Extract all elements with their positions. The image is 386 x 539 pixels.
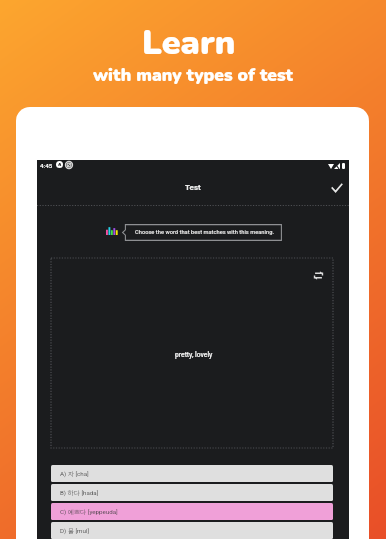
staticText: Learn (142, 20, 236, 66)
staticText: A) 자 [cha] (60, 470, 89, 478)
button[interactable]: Swap question and answer (308, 265, 328, 285)
button[interactable]: B) 하다 [hada] (51, 484, 333, 501)
staticText: Choose the word that best matches with t… (135, 229, 274, 236)
button[interactable]: A) 자 [cha] (51, 465, 333, 482)
staticText: Test (185, 183, 201, 192)
button[interactable]: Submit answer (327, 178, 347, 198)
staticText: B) 하다 [hada] (60, 489, 99, 497)
button[interactable]: D) 물 [mul] (51, 522, 333, 539)
staticText: with many types of test (93, 63, 293, 87)
button[interactable]: Choose the word that best matches with t… (122, 224, 282, 241)
staticText: C) 예쁘다 [yeppeuda] (60, 508, 118, 516)
staticText: 4:45 (40, 162, 53, 169)
button[interactable]: C) 예쁘다 [yeppeuda] (51, 503, 333, 520)
staticText: pretty, lovely (175, 351, 213, 359)
staticText: D) 물 [mul] (60, 527, 90, 535)
